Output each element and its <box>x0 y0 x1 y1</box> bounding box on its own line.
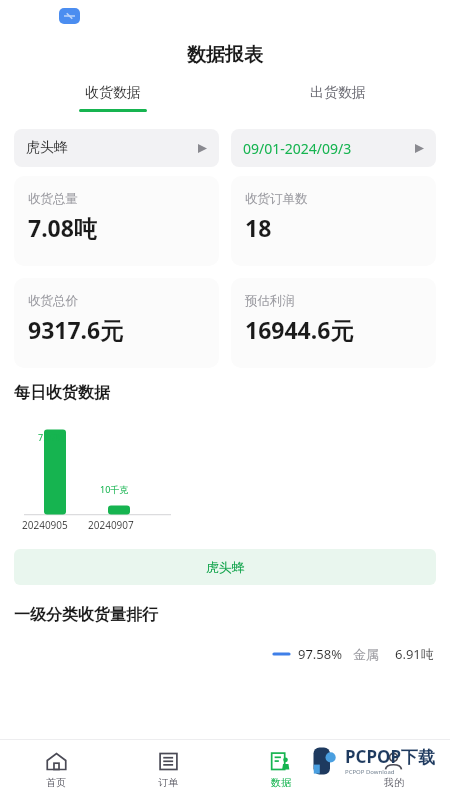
staticText: 收货总价 <box>28 293 78 309</box>
staticText: 每日收货数据 <box>14 383 110 403</box>
button[interactable]: 出货数据 <box>225 84 450 109</box>
button[interactable]: 收货数据 <box>0 84 225 112</box>
staticText: 20240907 <box>88 518 134 532</box>
button[interactable]: 收货总价 <box>14 278 219 368</box>
staticText: PCPOP下载 <box>345 745 436 768</box>
staticText: 09/01-2024/09/3 <box>243 139 411 158</box>
staticText: 97.58% <box>298 645 343 663</box>
staticText: 虎头蜂 <box>26 139 194 157</box>
staticText: 7.08吨 <box>28 212 97 243</box>
button[interactable]: 我的 <box>337 751 450 789</box>
staticText: 收货订单数 <box>245 191 308 207</box>
button[interactable]: 09/01-2024/09/3 <box>231 129 436 167</box>
button[interactable]: 收货总量 <box>14 176 219 266</box>
staticText: 一级分类收货量排行 <box>14 605 158 625</box>
button[interactable]: 首页 <box>0 751 112 789</box>
button[interactable]: 预估利润 <box>231 278 436 368</box>
staticText: 出货数据 <box>310 84 366 102</box>
staticText: 我的 <box>384 776 404 789</box>
staticText: 首页 <box>46 776 66 789</box>
button[interactable]: 虎头蜂 <box>14 549 436 585</box>
staticText: 18 <box>245 212 272 243</box>
button[interactable]: 数据 <box>224 751 337 789</box>
button[interactable]: 虎头蜂 <box>14 129 219 167</box>
button[interactable]: 收货订单数 <box>231 176 436 266</box>
staticText: 预估利润 <box>245 293 295 309</box>
staticText: 16944.6元 <box>245 314 354 345</box>
staticText: 订单 <box>158 776 178 789</box>
staticText: 10千克 <box>100 483 129 495</box>
button[interactable]: 订单 <box>112 751 224 789</box>
other: App badge <box>59 8 80 24</box>
staticText: 9317.6元 <box>28 314 124 345</box>
staticText: 数据报表 <box>187 43 263 67</box>
staticText: 数据 <box>271 776 291 789</box>
staticText: PCPOP Download <box>345 768 395 776</box>
staticText: 金属 <box>353 646 379 662</box>
staticText: 虎头蜂 <box>206 559 245 575</box>
staticText: 收货数据 <box>85 84 141 102</box>
staticText: 收货总量 <box>28 191 78 207</box>
staticText: 6.91吨 <box>395 645 434 663</box>
staticText: 20240905 <box>22 518 68 532</box>
staticText: 7.07吨 <box>38 431 65 443</box>
